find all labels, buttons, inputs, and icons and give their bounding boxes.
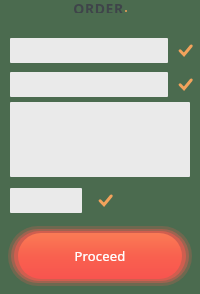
staticText: Proceed [74, 247, 126, 265]
button[interactable]: Field 3 valid [92, 187, 118, 213]
button[interactable]: Field 2 valid [172, 71, 198, 97]
button[interactable]: Proceed [18, 233, 182, 279]
button[interactable]: Field 1 valid [172, 37, 198, 63]
staticText: ORDER [73, 0, 124, 13]
